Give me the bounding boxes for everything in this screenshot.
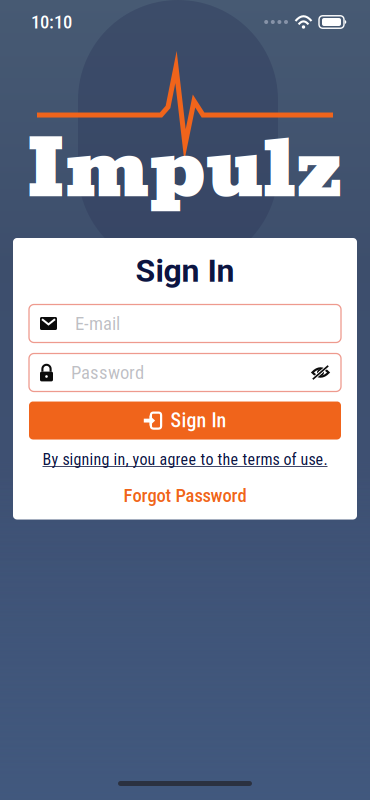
button[interactable]: Forgot Password (29, 486, 341, 504)
staticText: Password (71, 362, 144, 383)
staticText: Impulz (27, 107, 342, 231)
button[interactable]: E-mail (29, 304, 341, 342)
button[interactable]: Password (29, 353, 341, 391)
staticText: 10:10 (31, 11, 72, 33)
staticText: Forgot Password (123, 485, 246, 506)
staticText: E-mail (75, 313, 120, 334)
button[interactable]: Sign In (29, 401, 341, 439)
button[interactable]: By signing in, you agree to the terms of… (29, 450, 341, 468)
staticText: Sign In (170, 409, 226, 432)
staticText: Sign In (135, 252, 234, 289)
staticText: By signing in, you agree to the terms of… (42, 450, 327, 469)
